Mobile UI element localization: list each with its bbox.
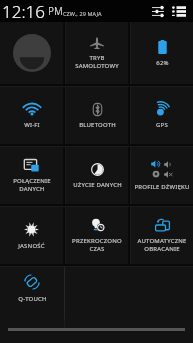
staticText: POŁĄCZENIE DANYCH (13, 177, 51, 193)
button[interactable]: GPS (131, 87, 193, 144)
button[interactable]: 62% (131, 22, 193, 84)
staticText: BLUETOOTH (79, 121, 116, 129)
button[interactable]: Q-TOUCH (0, 267, 64, 319)
button[interactable]: TRYB SAMOLOTOWY (66, 22, 128, 84)
staticText: 62% (156, 59, 169, 67)
button[interactable]: BLUETOOTH (66, 87, 128, 144)
button[interactable]: Quick settings (152, 5, 164, 18)
button[interactable]: WI-FI (0, 87, 63, 144)
staticText: CZW., 29 MAJA (63, 10, 102, 17)
staticText: PROFILE DŹWIĘKU (134, 183, 190, 191)
button[interactable]: PROFILE DŹWIĘKU (131, 147, 193, 204)
staticText: JASNOŚĆ (18, 242, 45, 250)
button[interactable]: JASNOŚĆ (0, 207, 63, 264)
staticText: 12:16 (2, 0, 45, 22)
staticText: TRYB SAMOLOTOWY (75, 54, 119, 70)
staticText: AUTOMATYCZNE OBRACANIE (137, 237, 187, 253)
button[interactable]: PRZEKROCZONO CZAS (66, 207, 128, 264)
staticText: Q-TOUCH (18, 295, 47, 303)
button[interactable]: UŻYCIE DANYCH (66, 147, 128, 204)
staticText: GPS (156, 121, 168, 129)
staticText: WI-FI (24, 121, 40, 129)
button[interactable]: AUTOMATYCZNE OBRACANIE (131, 207, 193, 264)
button[interactable] (0, 22, 63, 84)
button[interactable]: POŁĄCZENIE DANYCH (0, 147, 63, 204)
button[interactable]: Notifications (172, 5, 186, 18)
staticText: UŻYCIE DANYCH (73, 181, 122, 189)
staticText: PM (48, 4, 63, 18)
staticText: PRZEKROCZONO CZAS (72, 237, 122, 253)
